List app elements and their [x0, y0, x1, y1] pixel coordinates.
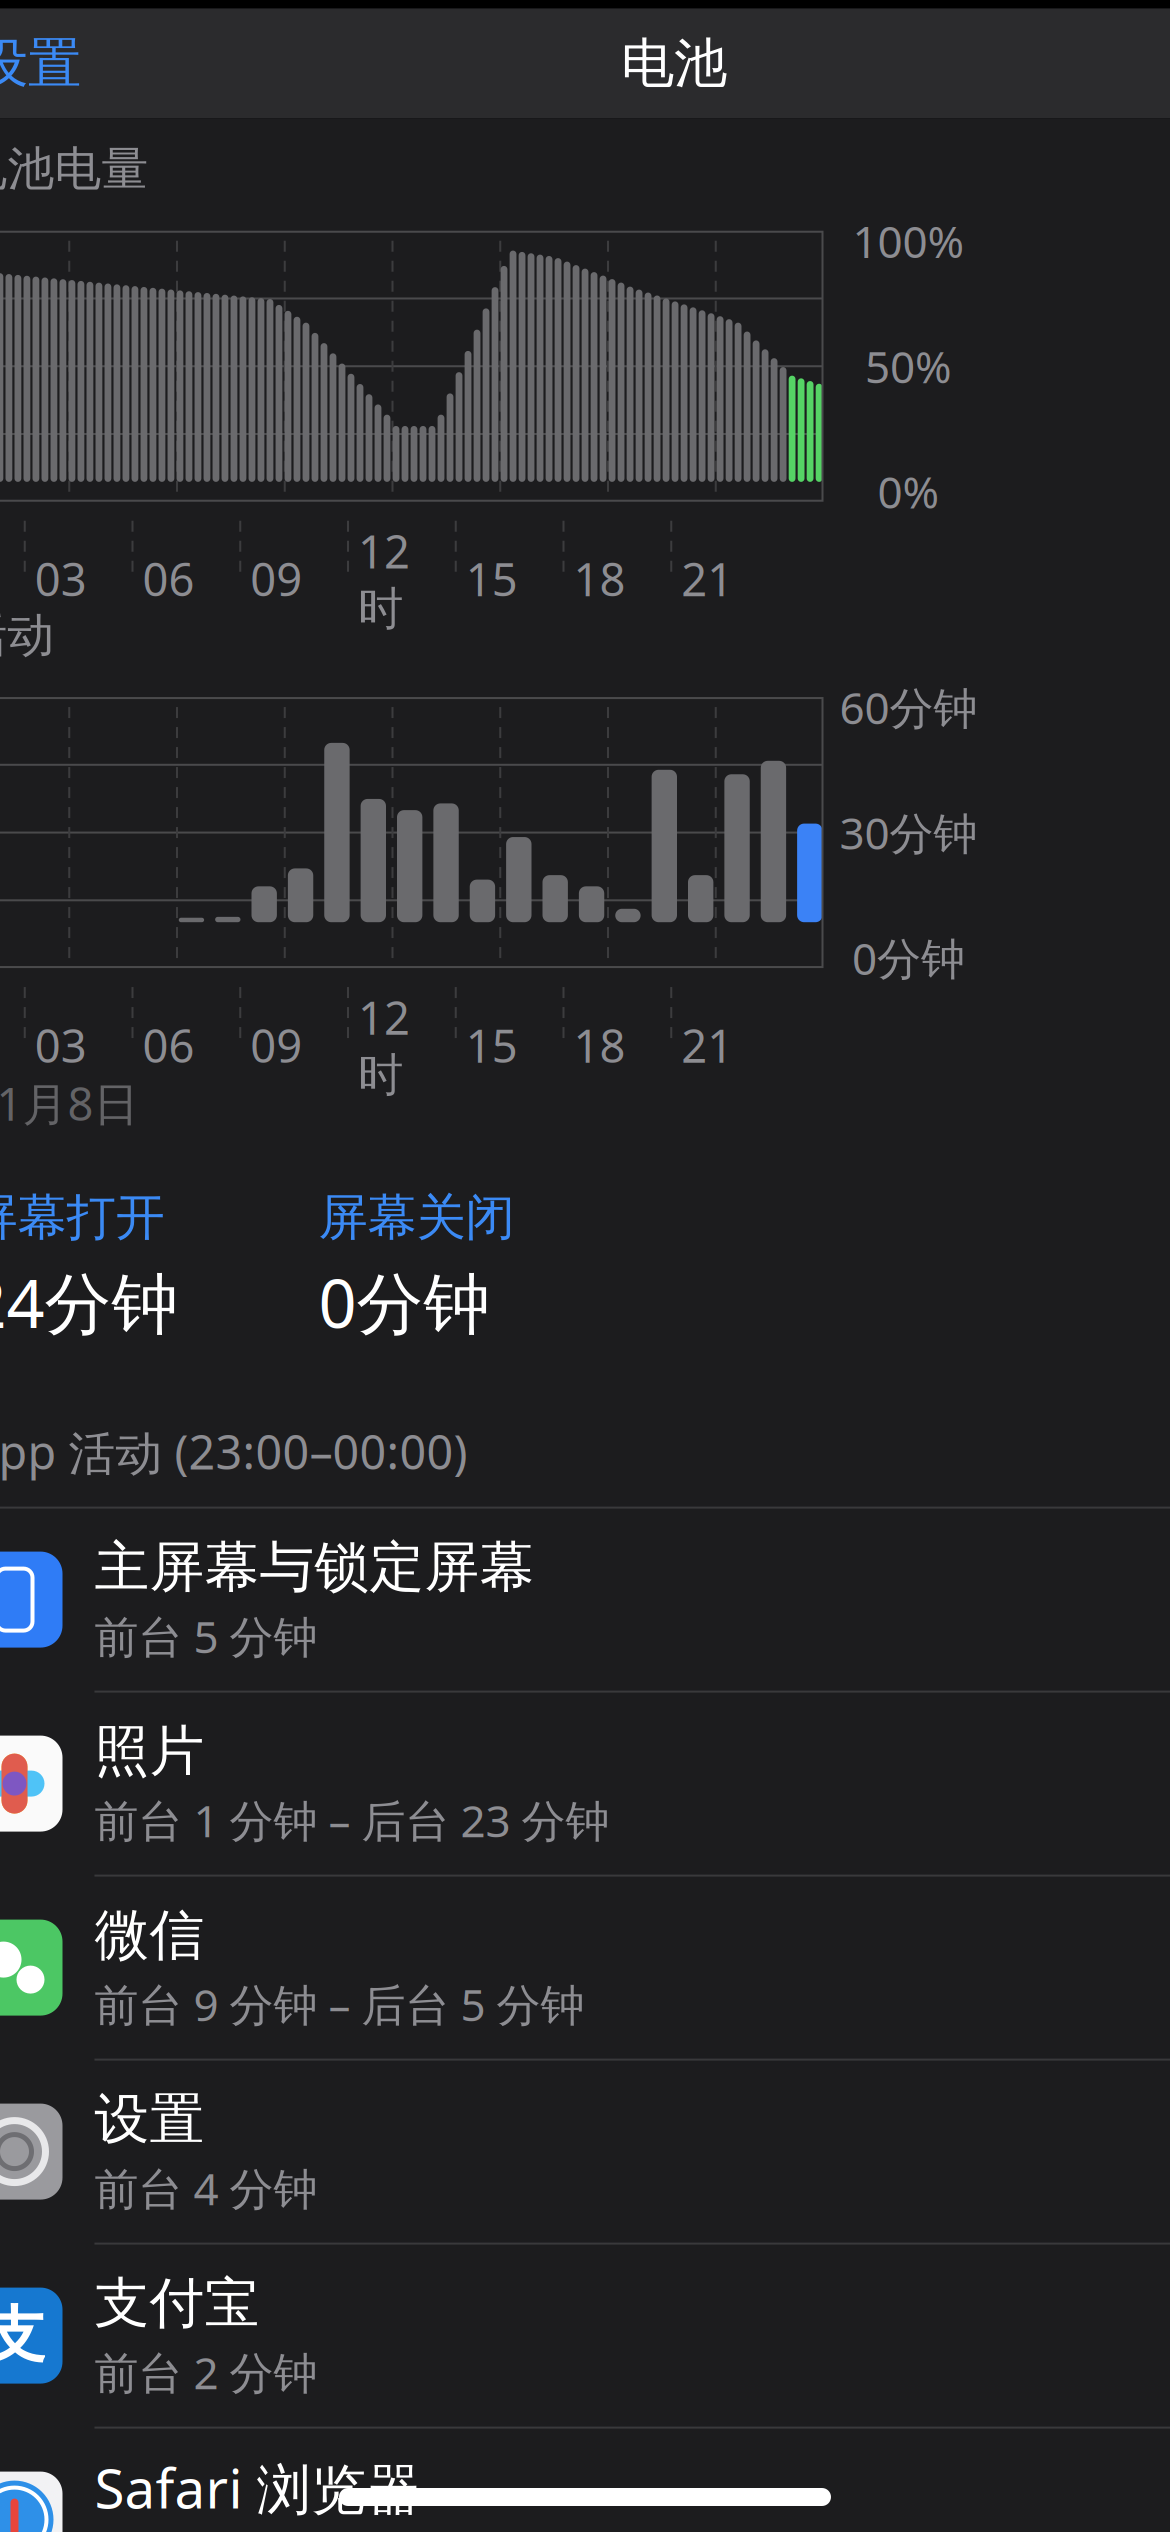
button[interactable]: Safari 浏览器	[0, 2429, 1170, 2532]
staticText: 电池电量	[0, 140, 148, 198]
staticText: 0分钟	[318, 1258, 490, 1346]
staticText: 60分钟	[839, 678, 977, 736]
button[interactable]: 设置	[0, 2061, 1170, 2245]
staticText: 21	[681, 549, 733, 609]
staticText: 屏幕打开	[0, 1187, 164, 1248]
staticText: 0%	[877, 462, 939, 521]
staticText: 03	[35, 549, 87, 609]
staticText: 前台 4 分钟	[94, 2159, 317, 2217]
staticText: 微信	[94, 1902, 204, 1969]
staticText: App 活动 (23:00–00:00)	[0, 1420, 467, 1483]
staticText: 12时	[358, 987, 410, 1103]
staticText: 支	[0, 2298, 45, 2373]
staticText: 24分钟	[0, 1258, 178, 1346]
staticText: 06	[142, 549, 194, 609]
staticText: 11月8日	[0, 1073, 138, 1133]
staticText: 50%	[865, 337, 952, 395]
staticText: 前台 9 分钟 – 后台 5 分钟	[94, 1975, 584, 2033]
staticText: 电池	[621, 31, 727, 96]
staticText: 设置	[94, 2086, 204, 2153]
staticText: 0分钟	[852, 929, 965, 987]
button[interactable]: 支	[0, 2245, 1170, 2429]
staticText: 前台 2 分钟	[94, 2343, 317, 2401]
staticText: 06	[142, 1015, 194, 1075]
staticText: 15	[466, 549, 518, 609]
staticText: 30分钟	[839, 803, 977, 862]
staticText: 100%	[852, 212, 964, 270]
staticText: 照片	[94, 1718, 204, 1785]
staticText: 21	[681, 1015, 733, 1075]
staticText: 09	[250, 1015, 302, 1075]
staticText: 前台 5 分钟	[94, 1607, 317, 1665]
button[interactable]: 主屏幕与锁定屏幕	[0, 1509, 1170, 1693]
staticText: 03	[35, 1015, 87, 1075]
staticText: Safari 浏览器	[94, 2451, 421, 2524]
staticText: 09	[250, 549, 302, 609]
staticText: 屏幕关闭	[318, 1187, 514, 1248]
staticText: 主屏幕与锁定屏幕	[94, 1534, 534, 1601]
button[interactable]: ‹	[0, 18, 97, 108]
staticText: 活动	[0, 607, 54, 664]
staticText: 设置	[0, 31, 81, 96]
staticText: 支付宝	[94, 2270, 259, 2337]
staticText: 前台 1 分钟 – 后台 23 分钟	[94, 1791, 609, 1849]
button[interactable]: 照片	[0, 1693, 1170, 1877]
staticText: 15	[466, 1015, 518, 1075]
staticText: 18	[573, 549, 625, 609]
staticText: 18	[573, 1015, 625, 1075]
staticText: 12时	[358, 521, 410, 637]
button[interactable]: 微信	[0, 1877, 1170, 2061]
